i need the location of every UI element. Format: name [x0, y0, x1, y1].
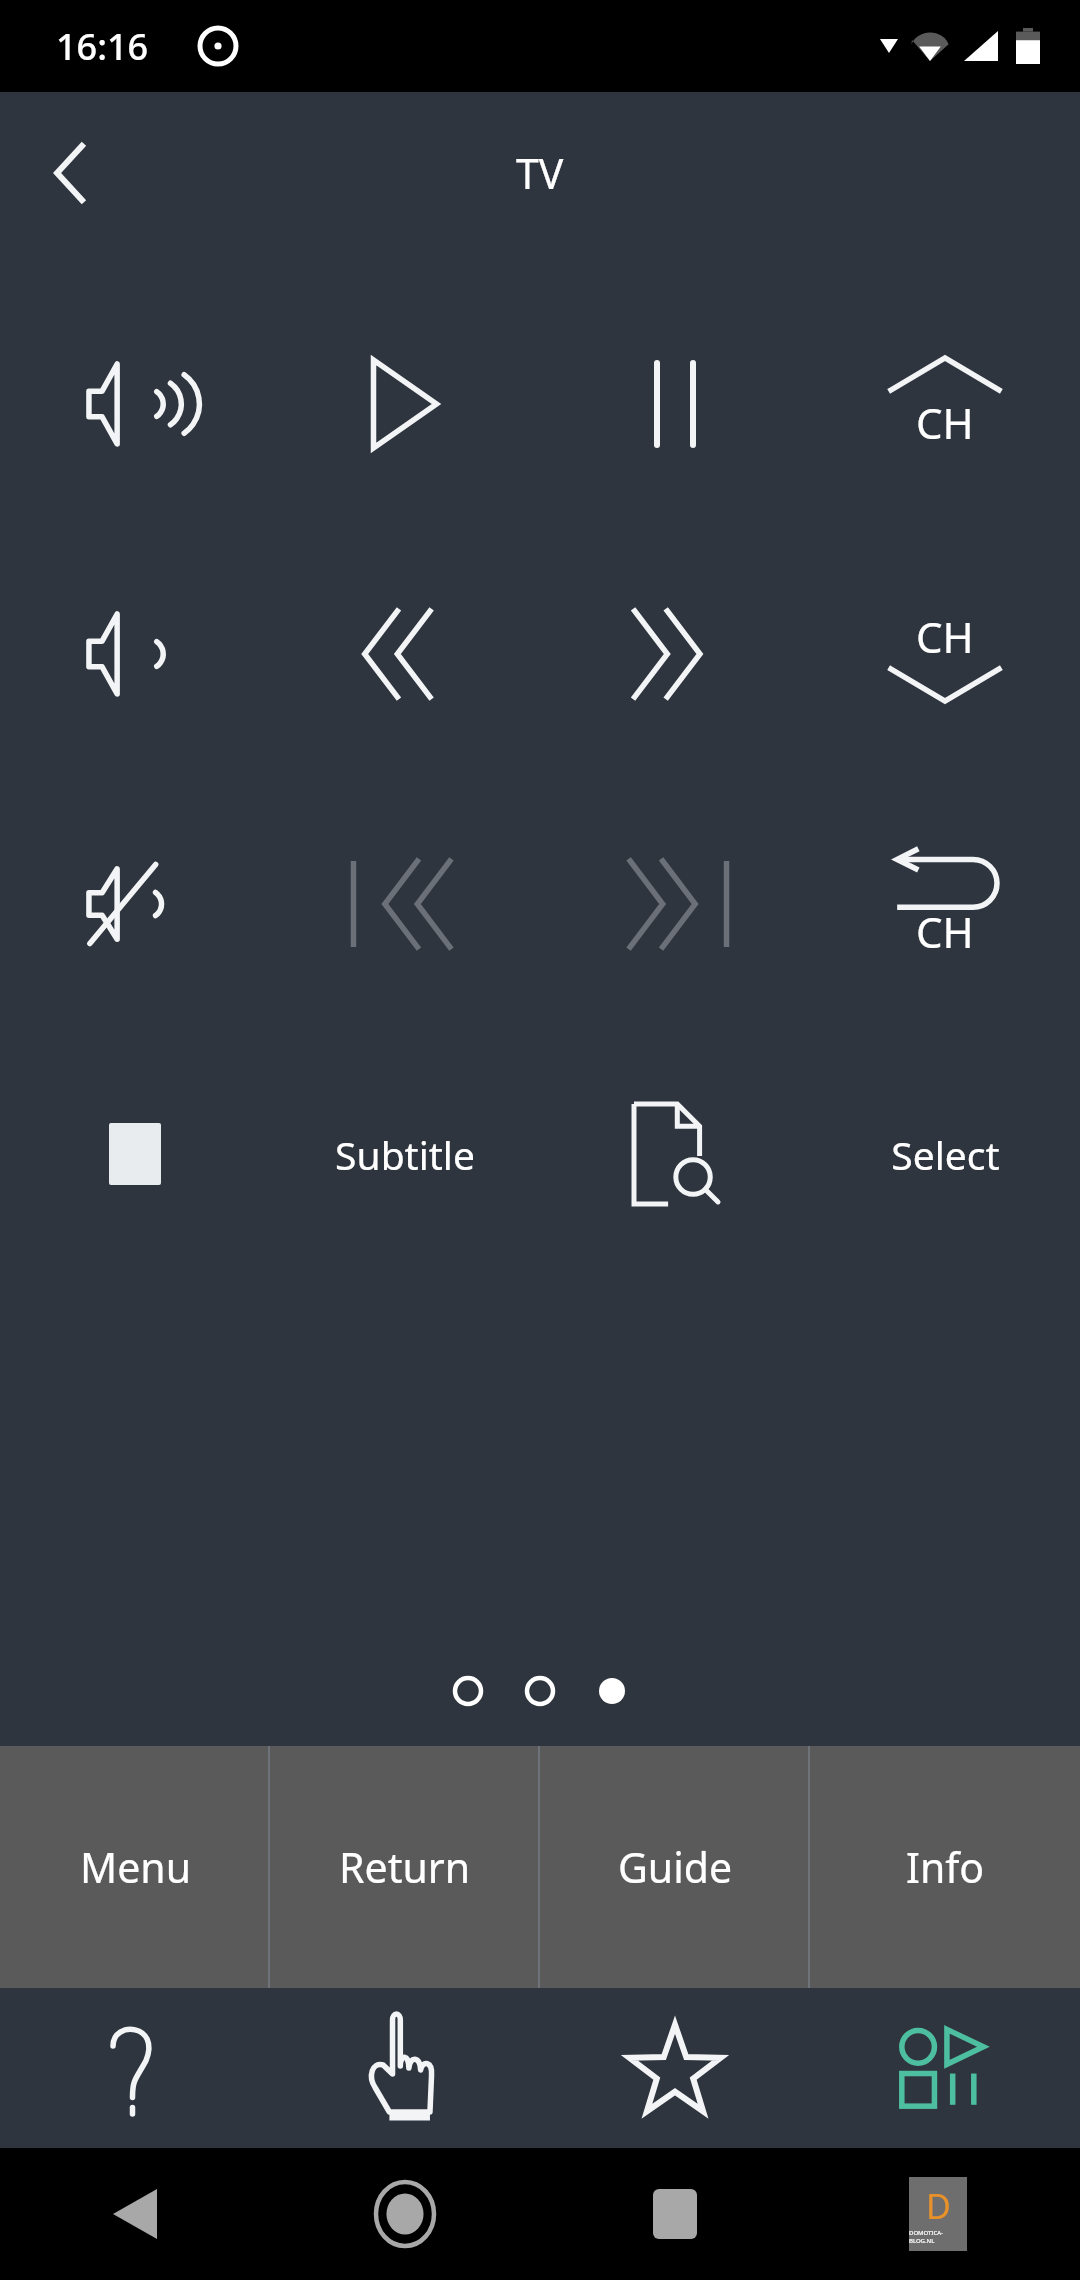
staticText: CH — [916, 608, 974, 665]
button[interactable]: Select — [810, 1094, 1080, 1214]
button[interactable]: Favorites — [540, 1988, 810, 2148]
staticText: Select — [891, 1128, 1000, 1181]
button[interactable]: Back — [22, 125, 118, 221]
staticText: DOMOTICA-BLOG.NL — [909, 2229, 967, 2245]
staticText: 16:16 — [56, 22, 149, 71]
button[interactable]: Previous — [270, 844, 540, 964]
staticText: Guide — [618, 1839, 733, 1895]
button[interactable]: Channel up — [810, 344, 1080, 464]
staticText: TV — [516, 145, 564, 201]
button[interactable]: Return — [270, 1746, 540, 1988]
button[interactable]: Home — [270, 2148, 540, 2280]
button[interactable]: Recents — [540, 2148, 810, 2280]
button[interactable]: Subtitle — [270, 1094, 540, 1214]
button[interactable]: Rewind — [270, 594, 540, 714]
staticText: Subtitle — [335, 1128, 475, 1181]
button[interactable]: Touchpad — [270, 1988, 540, 2148]
button[interactable]: Teletext — [0, 1094, 270, 1214]
button[interactable]: Guide — [540, 1746, 810, 1988]
button[interactable]: Next — [540, 844, 810, 964]
button[interactable]: Search — [540, 1094, 810, 1214]
button[interactable]: Channel down — [810, 594, 1080, 714]
button[interactable]: Volume down — [0, 594, 270, 714]
button[interactable]: Play — [270, 344, 540, 464]
button[interactable]: Mute — [0, 844, 270, 964]
staticText: D — [926, 2183, 951, 2229]
button[interactable]: Pause — [540, 344, 810, 464]
button[interactable]: Back — [0, 2148, 270, 2280]
staticText: CH — [916, 903, 974, 960]
button[interactable]: Info — [810, 1746, 1080, 1988]
button[interactable]: Help — [0, 1988, 270, 2148]
staticText: CH — [916, 394, 974, 451]
staticText: Info — [906, 1839, 985, 1895]
button[interactable]: Volume up — [0, 344, 270, 464]
button[interactable]: Devices — [810, 1988, 1080, 2148]
button[interactable]: Fast forward — [540, 594, 810, 714]
staticText: Menu — [80, 1839, 191, 1895]
button[interactable]: Menu — [0, 1746, 270, 1988]
button[interactable]: Previous channel — [810, 844, 1080, 964]
staticText: Return — [339, 1839, 471, 1895]
